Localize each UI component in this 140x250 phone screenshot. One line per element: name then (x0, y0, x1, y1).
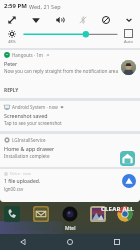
staticText: 1 file uploaded. (4, 178, 41, 185)
staticText: REPLY (4, 87, 19, 94)
staticText: Screenshot saved (4, 112, 48, 119)
staticText: Installation complete (4, 153, 50, 159)
button[interactable]: Phone (3, 205, 20, 222)
staticText: Hangouts · 1m (12, 52, 44, 58)
button[interactable]: Bluetooth off (71, 12, 94, 27)
button[interactable]: Android System · now (0, 101, 140, 131)
button[interactable]: CLEAR ALL (100, 204, 135, 214)
button[interactable]: Sound (48, 12, 71, 27)
button[interactable]: Gallery (89, 205, 106, 222)
staticText: Wed, 21 Sep (29, 3, 61, 10)
staticText: CLEAR ALL (101, 205, 134, 213)
staticText: Home & app drawer (4, 145, 55, 152)
staticText: Android System · now (12, 104, 58, 110)
button[interactable]: Drive · now (0, 169, 140, 202)
button[interactable]: Chrome (116, 205, 133, 222)
button[interactable]: Auto-rotate (0, 12, 24, 27)
staticText: Tap to see your screenshot (4, 120, 62, 126)
button[interactable]: Back (0, 234, 46, 250)
button[interactable]: Camera (61, 205, 78, 222)
button[interactable]: Auto brightness (124, 29, 133, 38)
button[interactable]: Hangouts · 1m (0, 50, 140, 98)
button[interactable]: Home (46, 234, 93, 250)
staticText: 2:59 PM (4, 2, 27, 10)
button[interactable]: Email (32, 205, 49, 222)
staticText: Mtel (65, 225, 76, 232)
button[interactable]: Brightness (24, 27, 117, 41)
button[interactable]: Do not disturb (94, 12, 117, 27)
staticText: Auto (124, 39, 133, 44)
staticText: LGInstallService (12, 137, 46, 143)
button[interactable]: Wi-Fi (24, 12, 48, 27)
staticText: Peter (4, 60, 18, 67)
staticText: Drive · now (10, 171, 31, 176)
staticText: 48% (8, 39, 16, 44)
staticText: lgn00.csv (4, 186, 24, 192)
button[interactable]: Expand quick settings (117, 12, 140, 27)
button[interactable]: LGInstallService (0, 134, 140, 167)
button[interactable]: Recent apps (93, 234, 140, 250)
staticText: Now you can reply straight from the noti… (4, 68, 118, 74)
button[interactable]: REPLY (3, 87, 20, 94)
